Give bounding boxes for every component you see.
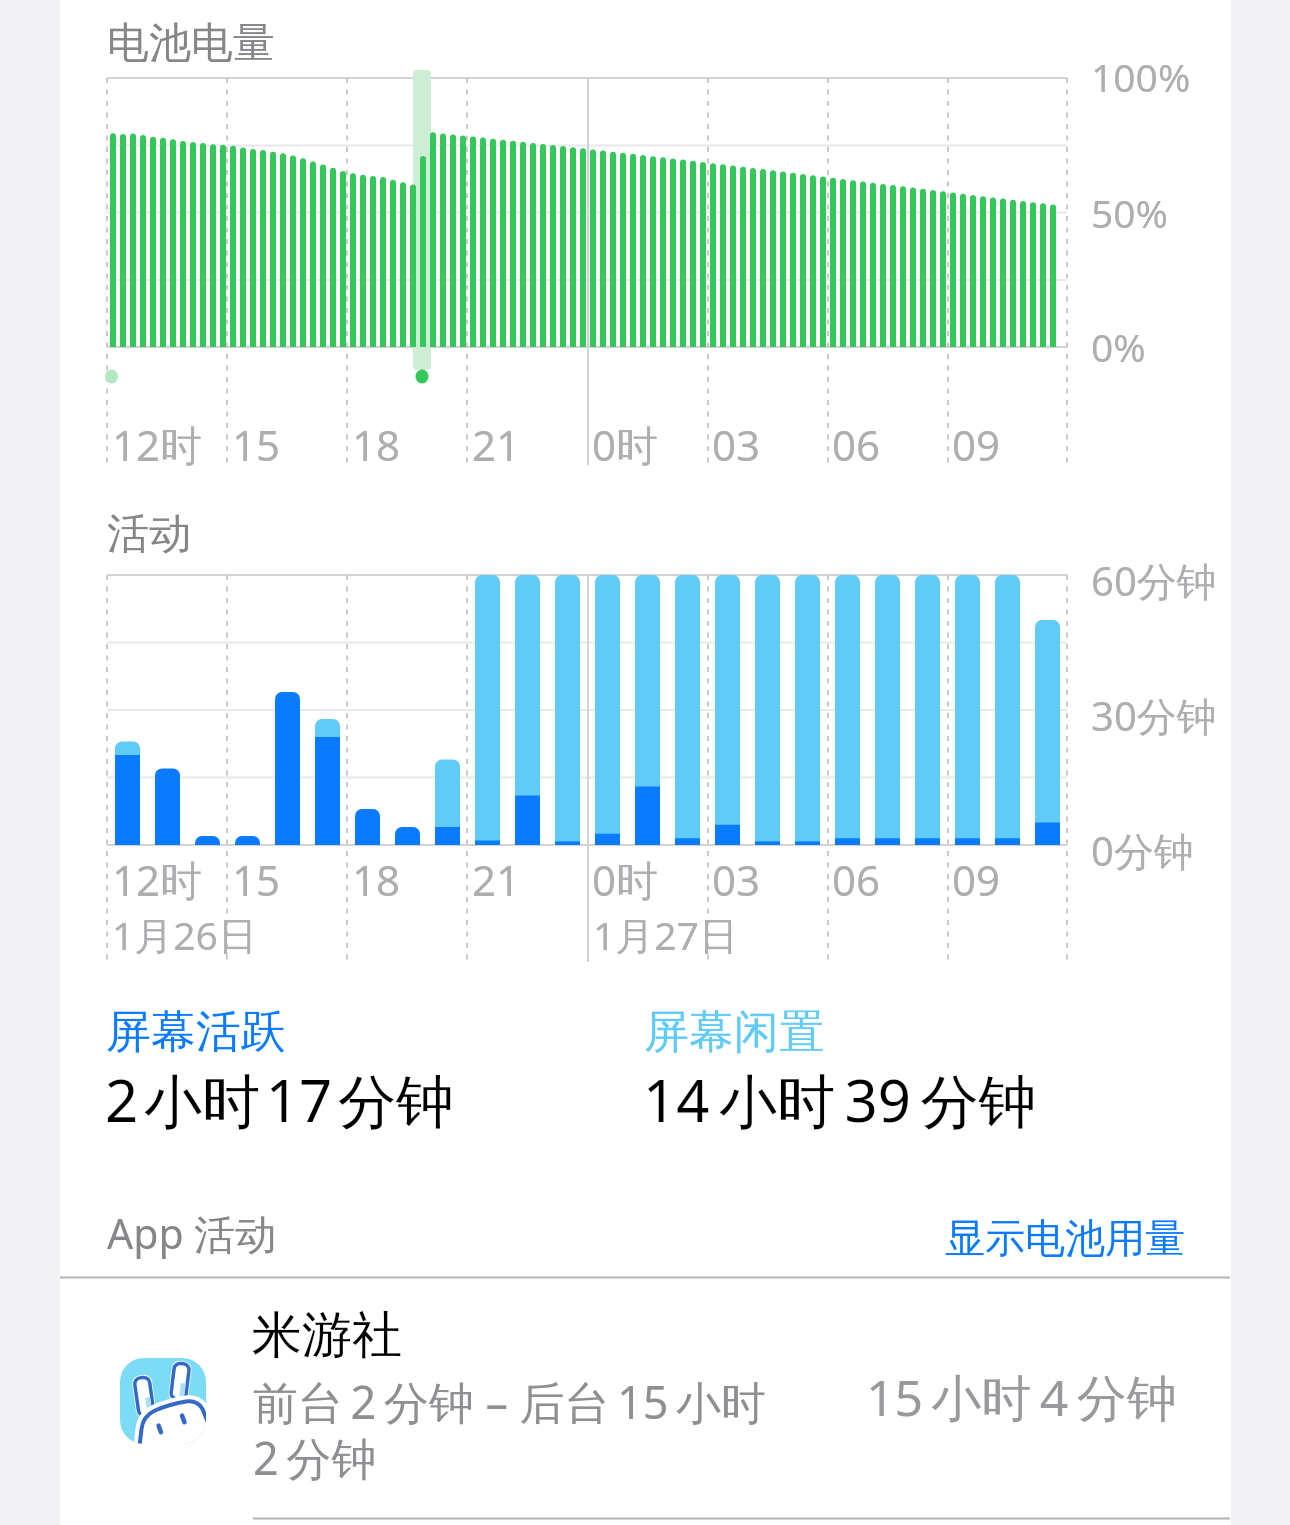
- staticText: 2 小时 17 分钟: [105, 1060, 454, 1139]
- staticText: 100%: [1091, 50, 1191, 103]
- button[interactable]: 米游社: [60, 1290, 1236, 1525]
- staticText: 06: [832, 851, 881, 908]
- staticText: 03: [712, 416, 761, 473]
- staticText: 06: [832, 416, 881, 473]
- staticText: 15 小时 4 分钟: [866, 1363, 1177, 1431]
- staticText: 30分钟: [1091, 688, 1217, 743]
- staticText: 屏幕闲置: [644, 1004, 824, 1061]
- staticText: 21: [472, 416, 521, 473]
- staticText: 15: [232, 851, 281, 908]
- staticText: 活动: [107, 508, 191, 561]
- staticText: 屏幕活跃: [106, 1004, 286, 1061]
- staticText: 米游社: [252, 1304, 402, 1367]
- staticText: 2 分钟: [253, 1427, 377, 1488]
- staticText: 18: [352, 851, 401, 908]
- staticText: 15: [232, 416, 281, 473]
- staticText: 0分钟: [1091, 823, 1194, 878]
- staticText: 1月26日: [112, 908, 257, 961]
- staticText: 电池电量: [107, 17, 275, 70]
- staticText: 60分钟: [1091, 553, 1217, 608]
- staticText: 12时: [112, 851, 203, 908]
- staticText: 09: [952, 851, 1001, 908]
- staticText: 18: [352, 416, 401, 473]
- staticText: 03: [712, 851, 761, 908]
- staticText: 前台 2 分钟 – 后台 15 小时: [253, 1371, 767, 1432]
- staticText: 50%: [1091, 186, 1169, 239]
- staticText: 0%: [1091, 320, 1146, 373]
- staticText: 1月27日: [593, 908, 738, 961]
- staticText: 09: [952, 416, 1001, 473]
- staticText: 14 小时 39 分钟: [643, 1060, 1037, 1139]
- staticText: 0时: [592, 416, 659, 473]
- staticText: 21: [472, 851, 521, 908]
- button[interactable]: 显示电池用量: [945, 1213, 1185, 1263]
- staticText: App 活动: [107, 1205, 277, 1261]
- staticText: 12时: [112, 416, 203, 473]
- staticText: 0时: [592, 851, 659, 908]
